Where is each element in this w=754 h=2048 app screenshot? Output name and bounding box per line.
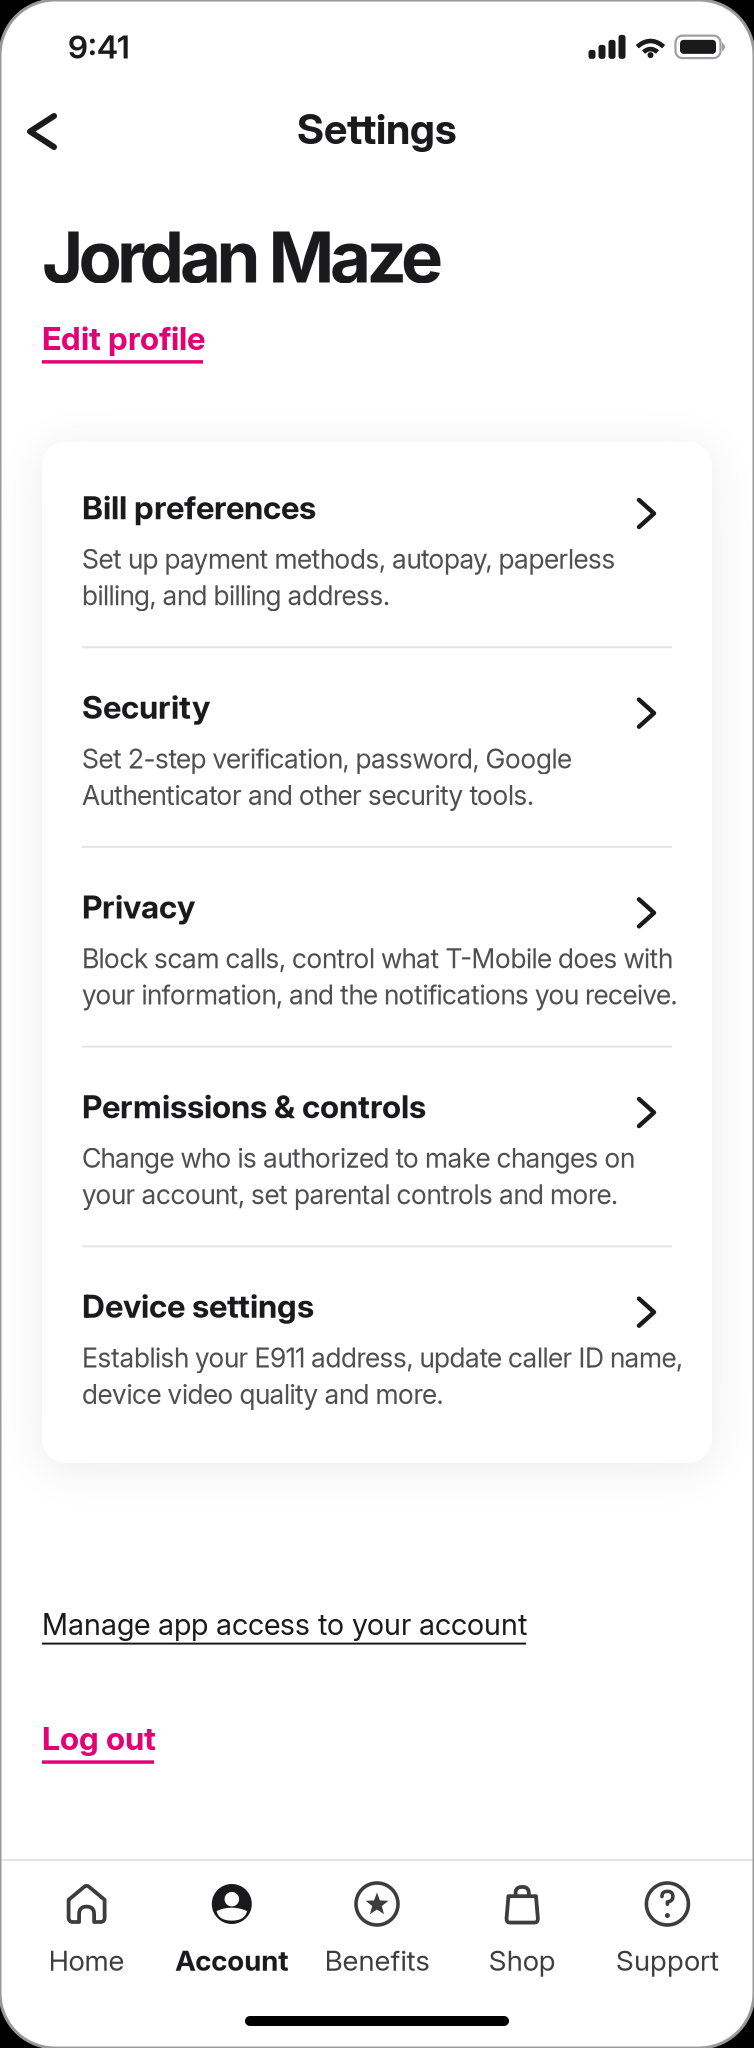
staticText: Edit profile (42, 319, 205, 357)
button[interactable]: Permissions & controls (82, 1048, 672, 1245)
button[interactable]: Account (159, 1883, 304, 1977)
button[interactable]: Device settings (82, 1247, 672, 1463)
staticText: Device settings (82, 1287, 314, 1325)
staticText: Set 2-step verification, password, Googl… (82, 743, 572, 811)
button[interactable]: Bill preferences (82, 442, 672, 646)
staticText: Permissions & controls (82, 1088, 426, 1125)
button[interactable]: Benefits (304, 1883, 450, 1977)
button[interactable]: Log out (0, 1645, 156, 1764)
button[interactable]: Support (595, 1883, 740, 1977)
staticText: 9:41 (68, 28, 130, 66)
staticText: Security (82, 688, 210, 726)
button[interactable]: Privacy (82, 848, 672, 1046)
staticText: Change who is authorized to make changes… (82, 1142, 635, 1210)
staticText: Bill preferences (82, 489, 316, 526)
button[interactable]: Security (82, 648, 672, 846)
staticText: Settings (297, 105, 457, 153)
staticText: Shop (489, 1944, 556, 1977)
staticText: Privacy (82, 888, 195, 926)
button[interactable]: Home (14, 1883, 159, 1977)
button[interactable]: Shop (450, 1883, 595, 1977)
staticText: Establish your E911 address, update call… (82, 1342, 683, 1410)
staticText: Log out (42, 1720, 156, 1757)
staticText: Jordan Maze (42, 215, 443, 298)
button[interactable]: Edit profile (0, 298, 205, 364)
staticText: Block scam calls, control what T-Mobile … (82, 943, 677, 1011)
staticText: Account (175, 1944, 288, 1977)
staticText: Benefits (324, 1944, 429, 1977)
staticText: Manage app access to your account (42, 1607, 527, 1642)
staticText: Support (616, 1944, 719, 1977)
staticText: Home (49, 1944, 125, 1977)
button[interactable]: Manage app access to your account (0, 1463, 527, 1645)
button[interactable]: Back (0, 99, 74, 159)
staticText: Set up payment methods, autopay, paperle… (82, 543, 615, 611)
